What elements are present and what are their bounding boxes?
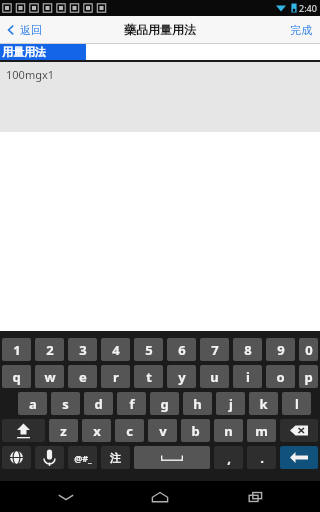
button[interactable]: o	[266, 365, 295, 388]
staticText: c	[126, 422, 133, 440]
button[interactable]: r	[101, 365, 130, 388]
button[interactable]: a	[18, 392, 47, 415]
button[interactable]: m	[247, 419, 276, 442]
button[interactable]: 3	[68, 338, 97, 361]
button[interactable]: c	[115, 419, 144, 442]
staticText: ,	[227, 449, 231, 467]
button[interactable]: 100mgx1	[0, 62, 320, 132]
staticText: 1	[13, 341, 21, 359]
staticText: 0	[305, 341, 313, 359]
staticText: u	[210, 368, 219, 386]
staticText: q	[12, 368, 21, 386]
staticText: m	[255, 422, 268, 440]
staticText: g	[160, 395, 169, 413]
button[interactable]: 6	[167, 338, 196, 361]
button[interactable]: 完成	[290, 23, 312, 37]
staticText: 4	[112, 341, 120, 359]
staticText: 完成	[290, 23, 312, 37]
button[interactable]: 7	[200, 338, 229, 361]
staticText: 3	[79, 341, 87, 359]
button[interactable]: x	[82, 419, 111, 442]
staticText: @#_	[74, 452, 92, 464]
button[interactable]: g	[150, 392, 179, 415]
staticText: i	[246, 368, 250, 386]
button[interactable]: f	[117, 392, 146, 415]
staticText: 用量用法	[2, 45, 46, 59]
staticText: v	[159, 422, 167, 440]
staticText: a	[29, 395, 37, 413]
button[interactable]: 2	[35, 338, 64, 361]
button[interactable]: @#_	[68, 446, 97, 469]
button[interactable]: h	[183, 392, 212, 415]
button[interactable]: 返回	[6, 23, 42, 37]
button[interactable]: j	[216, 392, 245, 415]
button[interactable]: v	[148, 419, 177, 442]
staticText: r	[113, 368, 119, 386]
staticText: 8	[244, 341, 252, 359]
button[interactable]: y	[167, 365, 196, 388]
button[interactable]: 注	[101, 446, 130, 469]
button[interactable]: z	[49, 419, 78, 442]
staticText: 2	[46, 341, 54, 359]
button[interactable]: 9	[266, 338, 295, 361]
staticText: 5	[145, 341, 153, 359]
button[interactable]: t	[134, 365, 163, 388]
staticText: d	[94, 395, 103, 413]
staticText: p	[304, 368, 313, 386]
staticText: f	[129, 395, 135, 413]
staticText: x	[93, 422, 101, 440]
staticText: s	[62, 395, 69, 413]
staticText: b	[191, 422, 200, 440]
staticText: 100mgx1	[6, 67, 55, 82]
button[interactable]: p	[299, 365, 318, 388]
button[interactable]: Home	[132, 481, 188, 512]
button[interactable]: d	[84, 392, 113, 415]
staticText: 9	[277, 341, 285, 359]
staticText: 6	[178, 341, 186, 359]
button[interactable]: 用量用法	[0, 44, 86, 60]
button[interactable]: Back	[38, 481, 94, 512]
staticText: 藥品用量用法	[124, 22, 196, 37]
staticText: 注	[110, 451, 121, 465]
staticText: l	[295, 395, 299, 413]
button[interactable]: s	[51, 392, 80, 415]
staticText: k	[259, 395, 268, 413]
button[interactable]: w	[35, 365, 64, 388]
button[interactable]: .	[247, 446, 276, 469]
staticText: t	[146, 368, 152, 386]
button[interactable]: q	[2, 365, 31, 388]
button[interactable]: Voice input	[35, 446, 64, 469]
button[interactable]: e	[68, 365, 97, 388]
button[interactable]: i	[233, 365, 262, 388]
button[interactable]: Space	[134, 446, 210, 469]
button[interactable]: ,	[214, 446, 243, 469]
staticText: o	[276, 368, 285, 386]
button[interactable]: l	[282, 392, 311, 415]
button[interactable]: Shift	[2, 419, 45, 442]
button[interactable]: Backspace	[280, 419, 318, 442]
button[interactable]: k	[249, 392, 278, 415]
staticText: 7	[211, 341, 219, 359]
staticText: 2:40	[299, 2, 317, 14]
button[interactable]: Change language	[2, 446, 31, 469]
staticText: h	[193, 395, 202, 413]
staticText: j	[229, 395, 233, 413]
button[interactable]: 0	[299, 338, 318, 361]
button[interactable]: b	[181, 419, 210, 442]
button[interactable]: 5	[134, 338, 163, 361]
button[interactable]: 8	[233, 338, 262, 361]
button[interactable]: 4	[101, 338, 130, 361]
staticText: n	[224, 422, 233, 440]
staticText: .	[260, 449, 264, 467]
staticText: e	[79, 368, 87, 386]
button[interactable]: Recent apps	[226, 481, 282, 512]
staticText: y	[178, 368, 186, 386]
button[interactable]: 1	[2, 338, 31, 361]
staticText: z	[60, 422, 67, 440]
button[interactable]: Enter	[280, 446, 318, 469]
button[interactable]: u	[200, 365, 229, 388]
staticText: 返回	[20, 23, 42, 37]
staticText: w	[44, 368, 56, 386]
button[interactable]: n	[214, 419, 243, 442]
